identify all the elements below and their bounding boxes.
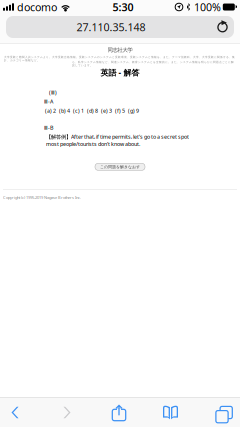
button[interactable]: 27.110.35.148 — [0, 16, 240, 38]
button[interactable]: Tabs — [196, 398, 240, 427]
staticText: (a) 2 (b) 4 (c) 1 (d) 8 (e) 3 (f) 5 (g) … — [45, 107, 139, 114]
staticText: も、私学システム情報など、関連システム、教育システムとを全般的に。また、システム… — [72, 60, 234, 67]
staticText: 英語 - 解答 — [100, 67, 139, 78]
staticText: 100% — [194, 0, 221, 14]
button[interactable]: Forward — [41, 398, 93, 427]
staticText: docomo — [17, 0, 57, 14]
button[interactable]: Back — [0, 398, 41, 427]
staticText: 5:30 — [112, 0, 133, 14]
button[interactable]: Share — [93, 398, 145, 427]
staticText: Copyright (c) 1995-2019 Nagase Brothers … — [3, 195, 81, 200]
staticText: Ⅲ-B — [44, 124, 53, 131]
button[interactable]: この問題を解きなおす — [95, 163, 145, 170]
staticText: Ⅲ-A — [44, 98, 53, 105]
staticText: 大学受験と難関入試システムより。大学受験合格情報。受験システムのシステムと受験環… — [4, 55, 235, 62]
staticText: 【解答例】After that, if time permits, let's … — [46, 133, 189, 147]
staticText: 27.110.35.148 — [76, 20, 145, 34]
button[interactable]: Bookmarks — [145, 398, 196, 427]
staticText: 同志社大学 — [107, 47, 132, 53]
staticText: この問題を解きなおす — [100, 164, 140, 169]
staticText: (Ⅲ) — [49, 89, 57, 96]
